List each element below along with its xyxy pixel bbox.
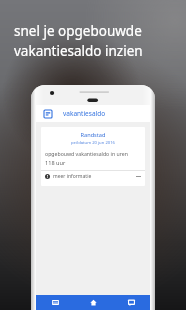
staticText: vakantiesaldo (63, 109, 106, 118)
button[interactable]: Randstad (41, 127, 145, 186)
staticText: Randstad (41, 131, 145, 139)
staticText: vakantiesaldo inzien (14, 42, 143, 60)
staticText: peildatum 20 jun 2016 (41, 140, 145, 146)
button[interactable]: Home (74, 295, 112, 310)
button[interactable]: vakantiesaldo menu (41, 107, 54, 120)
staticText: 118 uur (45, 159, 66, 167)
staticText: meer informatie (53, 173, 92, 180)
button[interactable]: meer informatie (41, 171, 145, 182)
button[interactable]: Berichten (112, 295, 150, 310)
staticText: snel je opgebouwde (14, 22, 142, 40)
staticText: opgebouwd vakantiesaldo in uren (45, 150, 128, 157)
button[interactable]: Overzicht (36, 295, 74, 310)
